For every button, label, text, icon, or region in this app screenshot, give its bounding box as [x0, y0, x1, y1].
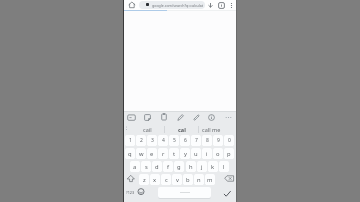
- button[interactable]: b: [183, 174, 193, 185]
- button[interactable]: j: [197, 161, 207, 172]
- staticText: 5: [173, 137, 176, 144]
- button[interactable]: z: [139, 174, 149, 185]
- staticText: 1: [129, 137, 132, 144]
- staticText: 9: [217, 137, 220, 144]
- button[interactable]: 1: [125, 135, 135, 146]
- button[interactable]: n: [194, 174, 204, 185]
- button[interactable]: t: [169, 148, 179, 159]
- staticText: i: [206, 150, 208, 158]
- button[interactable]: g: [174, 161, 184, 172]
- button[interactable]: w: [136, 148, 146, 159]
- staticText: k: [211, 163, 215, 171]
- button[interactable]: [228, 2, 235, 9]
- button[interactable]: d: [152, 161, 162, 172]
- button[interactable]: [127, 114, 136, 121]
- staticText: q: [128, 150, 132, 158]
- button[interactable]: [126, 175, 136, 183]
- staticText: call me: [202, 126, 221, 133]
- button[interactable]: h: [186, 161, 196, 172]
- button[interactable]: 6: [180, 135, 190, 146]
- staticText: cail: [143, 126, 152, 133]
- button[interactable]: [177, 114, 184, 121]
- button[interactable]: s: [141, 161, 151, 172]
- staticText: b: [186, 176, 190, 184]
- button[interactable]: ?123: [124, 187, 137, 198]
- staticText: r: [162, 150, 165, 158]
- button[interactable]: 3: [147, 135, 157, 146]
- staticText: google.com/search?q=calculator: [152, 3, 203, 8]
- staticText: m: [207, 176, 213, 184]
- button[interactable]: k: [208, 161, 218, 172]
- staticText: a: [133, 163, 137, 171]
- staticText: x: [153, 176, 157, 184]
- staticText: j: [201, 163, 203, 171]
- button[interactable]: [223, 190, 232, 198]
- staticText: d: [155, 163, 159, 171]
- staticText: p: [227, 150, 231, 158]
- button[interactable]: [208, 114, 215, 121]
- staticText: c: [165, 176, 168, 184]
- button[interactable]: f: [163, 161, 173, 172]
- staticText: z: [143, 176, 146, 184]
- button[interactable]: [144, 114, 151, 121]
- button[interactable]: 9: [213, 135, 223, 146]
- staticText: t: [173, 150, 176, 158]
- button[interactable]: 4: [158, 135, 168, 146]
- staticText: w: [139, 150, 144, 158]
- staticText: s: [145, 163, 148, 171]
- button[interactable]: [161, 113, 167, 121]
- button[interactable]: call me: [197, 124, 226, 135]
- button[interactable]: 0: [224, 135, 234, 146]
- staticText: 7: [195, 137, 198, 144]
- button[interactable]: 2: [136, 135, 146, 146]
- button[interactable]: a: [130, 161, 140, 172]
- button[interactable]: [218, 2, 225, 9]
- button[interactable]: cal: [165, 124, 198, 135]
- button[interactable]: google.com/search?q=calculator: [139, 1, 205, 9]
- button[interactable]: i: [202, 148, 212, 159]
- button[interactable]: x: [150, 174, 160, 185]
- staticText: cal: [178, 126, 186, 133]
- staticText: h: [189, 163, 193, 171]
- button[interactable]: c: [161, 174, 171, 185]
- button[interactable]: u: [191, 148, 201, 159]
- button[interactable]: 5: [169, 135, 179, 146]
- button[interactable]: y: [180, 148, 190, 159]
- staticText: e: [150, 150, 154, 158]
- staticText: n: [197, 176, 201, 184]
- button[interactable]: 8: [202, 135, 212, 146]
- button[interactable]: [128, 1, 136, 9]
- button[interactable]: [193, 114, 200, 121]
- button[interactable]: cail: [132, 124, 163, 135]
- button[interactable]: v: [172, 174, 182, 185]
- staticText: 4: [162, 137, 165, 144]
- staticText: 6: [184, 137, 187, 144]
- staticText: l: [223, 163, 225, 171]
- button[interactable]: o: [213, 148, 223, 159]
- button[interactable]: l: [219, 161, 229, 172]
- button[interactable]: [158, 187, 211, 198]
- staticText: y: [184, 150, 187, 158]
- staticText: 8: [206, 137, 209, 144]
- staticText: u: [194, 150, 198, 158]
- button[interactable]: q: [125, 148, 135, 159]
- staticText: 2: [140, 137, 143, 144]
- button[interactable]: 7: [191, 135, 201, 146]
- button[interactable]: r: [158, 148, 168, 159]
- button[interactable]: [137, 188, 145, 196]
- button[interactable]: [207, 2, 214, 9]
- staticText: ?123: [126, 190, 135, 195]
- button[interactable]: m: [205, 174, 215, 185]
- staticText: g: [177, 163, 181, 171]
- button[interactable]: [224, 175, 235, 183]
- staticText: v: [176, 176, 179, 184]
- staticText: 0: [228, 137, 231, 144]
- staticText: o: [216, 150, 220, 158]
- staticText: 3: [151, 137, 154, 144]
- button[interactable]: e: [147, 148, 157, 159]
- button[interactable]: p: [224, 148, 234, 159]
- staticText: f: [167, 163, 169, 171]
- button[interactable]: [225, 114, 232, 121]
